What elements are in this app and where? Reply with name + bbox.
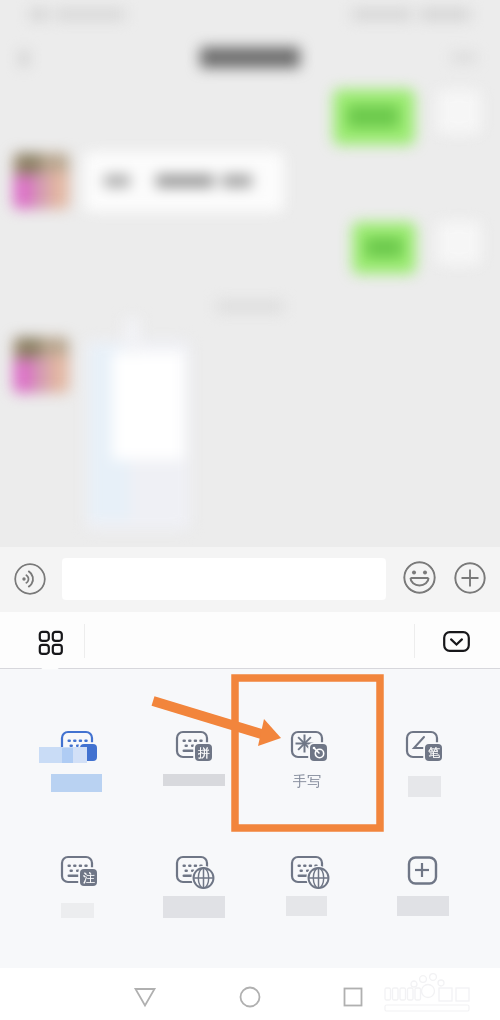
- button[interactable]: Switch input method: [39, 631, 61, 653]
- staticText: 注: [83, 870, 95, 885]
- button[interactable]: More options: [454, 562, 486, 594]
- staticText: 拼: [198, 745, 210, 760]
- button[interactable]: 拼: [142, 711, 242, 799]
- staticText: 笔: [428, 745, 440, 760]
- button[interactable]: Voice input: [14, 563, 46, 595]
- button[interactable]: Emoji: [403, 561, 436, 594]
- button[interactable]: 注: [27, 836, 127, 924]
- button[interactable]: [257, 836, 357, 924]
- button[interactable]: Home: [236, 979, 264, 1007]
- button[interactable]: [142, 836, 242, 924]
- button[interactable]: Back: [131, 979, 159, 1007]
- button[interactable]: Recent apps: [339, 979, 367, 1007]
- button[interactable]: 笔: [372, 711, 472, 799]
- button[interactable]: Hide keyboard: [443, 631, 470, 652]
- button[interactable]: 手写: [257, 711, 357, 799]
- button[interactable]: [372, 836, 472, 924]
- staticText: 手写: [257, 773, 357, 791]
- button[interactable]: [27, 711, 127, 799]
